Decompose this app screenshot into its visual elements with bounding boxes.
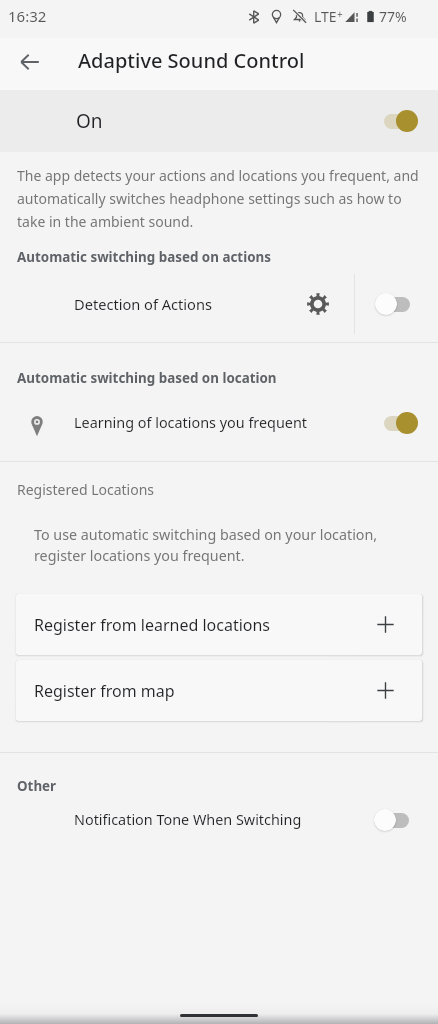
- staticText: 16:32: [8, 6, 47, 26]
- button[interactable]: Detection of Actions settings: [296, 282, 340, 326]
- staticText: Registered Locations: [17, 480, 438, 499]
- staticText: Register from map: [34, 680, 175, 702]
- staticText: The app detects your actions and locatio…: [17, 166, 420, 231]
- button[interactable]: Register from map: [16, 660, 422, 721]
- staticText: Detection of Actions: [74, 294, 212, 314]
- button[interactable]: Notification Tone When Switching: [0, 795, 438, 845]
- staticText: Other: [17, 777, 438, 795]
- staticText: To use automatic switching based on your…: [34, 525, 408, 565]
- button[interactable]: Detection of Actions: [0, 272, 354, 336]
- staticText: 77%: [379, 7, 407, 26]
- button[interactable]: Detection of Actions toggle: [355, 272, 438, 336]
- staticText: Automatic switching based on actions: [17, 248, 438, 266]
- button[interactable]: On: [0, 90, 438, 152]
- button[interactable]: Register from learned locations: [16, 594, 422, 655]
- staticText: +: [337, 7, 343, 21]
- button[interactable]: Back: [10, 42, 50, 82]
- staticText: LTE: [314, 7, 337, 26]
- staticText: Notification Tone When Switching: [74, 810, 302, 830]
- staticText: On: [76, 108, 103, 134]
- button[interactable]: Learning of locations you frequent: [0, 395, 438, 451]
- staticText: Adaptive Sound Control: [78, 47, 305, 74]
- staticText: Automatic switching based on location: [17, 369, 438, 387]
- staticText: Register from learned locations: [34, 614, 271, 636]
- staticText: Learning of locations you frequent: [74, 413, 308, 433]
